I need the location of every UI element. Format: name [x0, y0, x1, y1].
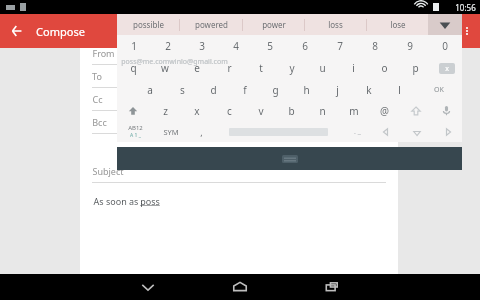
- staticText: q: [130, 61, 137, 75]
- staticText: powered: [195, 19, 228, 30]
- staticText: Cc: [92, 93, 103, 105]
- staticText: OK: [434, 85, 444, 95]
- button[interactable]: Shift: [117, 100, 149, 121]
- button[interactable]: @: [369, 100, 400, 121]
- button[interactable]: 9: [392, 35, 427, 57]
- button[interactable]: OK: [415, 79, 462, 100]
- button[interactable]: h: [291, 79, 322, 100]
- button[interactable]: ,: [188, 121, 215, 142]
- button[interactable]: Hide keyboard: [117, 147, 462, 170]
- button[interactable]: 0: [427, 35, 462, 57]
- staticText: poss: [140, 195, 160, 207]
- staticText: To: [92, 70, 102, 82]
- staticText: Subject: [92, 165, 124, 177]
- button[interactable]: 4: [219, 35, 253, 57]
- button[interactable]: q: [117, 57, 149, 79]
- staticText: lose: [390, 19, 406, 30]
- button[interactable]: d: [198, 79, 229, 100]
- button[interactable]: n: [307, 100, 338, 121]
- button[interactable]: 7: [322, 35, 357, 57]
- button[interactable]: i: [338, 57, 369, 79]
- button[interactable]: lose: [367, 14, 428, 35]
- button[interactable]: e: [181, 57, 213, 79]
- staticText: x: [194, 104, 200, 118]
- button[interactable]: a: [134, 79, 166, 100]
- staticText: t: [259, 61, 263, 75]
- button[interactable]: s: [166, 79, 198, 100]
- button[interactable]: Recents: [315, 274, 349, 300]
- button[interactable]: 8: [357, 35, 392, 57]
- button[interactable]: g: [260, 79, 291, 100]
- staticText: 8: [372, 39, 378, 53]
- button[interactable]: c: [213, 100, 245, 121]
- button[interactable]: Cc: [92, 88, 386, 110]
- other: Back: [10, 24, 24, 38]
- button[interactable]: Caps: [400, 100, 431, 121]
- button[interactable]: Back: [131, 274, 165, 300]
- button[interactable]: More suggestions: [428, 14, 462, 35]
- button[interactable]: t: [245, 57, 276, 79]
- button[interactable]: Subject: [92, 160, 386, 182]
- button[interactable]: power: [243, 14, 304, 35]
- button[interactable]: Down: [402, 121, 432, 142]
- button[interactable]: Voice input: [431, 100, 462, 121]
- button[interactable]: m: [338, 100, 369, 121]
- staticText: w: [161, 61, 169, 75]
- button[interactable]: l: [384, 79, 415, 100]
- button[interactable]: u: [307, 57, 338, 79]
- button[interactable]: Back: [0, 14, 95, 48]
- staticText: SYM: [163, 127, 179, 137]
- button[interactable]: Left: [372, 121, 402, 142]
- staticText: 3: [199, 39, 205, 53]
- button[interactable]: possible: [117, 14, 179, 35]
- button[interactable]: p: [400, 57, 431, 79]
- button[interactable]: 5: [253, 35, 287, 57]
- staticText: y: [289, 61, 295, 75]
- staticText: e: [194, 61, 200, 75]
- button[interactable]: From: [92, 42, 386, 64]
- button[interactable]: Delete: [431, 57, 462, 79]
- button[interactable]: loss: [305, 14, 366, 35]
- button[interactable]: z: [149, 100, 181, 121]
- staticText: Bcc: [92, 116, 107, 128]
- staticText: x: [445, 64, 449, 74]
- button[interactable]: 2: [151, 35, 185, 57]
- button[interactable]: powered: [180, 14, 242, 35]
- staticText: 7: [337, 39, 343, 53]
- staticText: u: [319, 61, 326, 75]
- button[interactable]: x: [181, 100, 213, 121]
- staticText: possible: [133, 19, 164, 30]
- staticText: k: [366, 83, 372, 97]
- button[interactable]: w: [149, 57, 181, 79]
- staticText: s: [180, 83, 185, 97]
- staticText: As soon as: [92, 195, 140, 207]
- staticText: A 1 _: [130, 132, 141, 139]
- button[interactable]: AB12: [117, 121, 154, 142]
- button[interactable]: r: [213, 57, 245, 79]
- staticText: From: [92, 47, 115, 59]
- button[interactable]: k: [353, 79, 384, 100]
- button[interactable]: f: [229, 79, 260, 100]
- button[interactable]: 3: [185, 35, 219, 57]
- button[interactable]: v: [245, 100, 276, 121]
- button[interactable]: b: [276, 100, 307, 121]
- button[interactable]: SYM: [154, 121, 188, 142]
- staticText: f: [243, 83, 247, 97]
- button[interactable]: 1: [117, 35, 151, 57]
- staticText: a: [147, 83, 153, 97]
- button[interactable]: y: [276, 57, 307, 79]
- button[interactable]: o: [369, 57, 400, 79]
- button[interactable]: Space: [215, 121, 342, 142]
- staticText: 1: [131, 39, 137, 53]
- staticText: b: [288, 104, 295, 118]
- staticText: 10:56: [455, 2, 476, 13]
- staticText: Compose: [36, 24, 85, 39]
- button[interactable]: Bcc: [92, 111, 386, 133]
- button[interactable]: To: [92, 65, 386, 87]
- button[interactable]: More options: [454, 14, 480, 48]
- button[interactable]: 6: [287, 35, 322, 57]
- button[interactable]: Right: [432, 121, 462, 142]
- button[interactable]: j: [322, 79, 353, 100]
- button[interactable]: Home: [223, 274, 257, 300]
